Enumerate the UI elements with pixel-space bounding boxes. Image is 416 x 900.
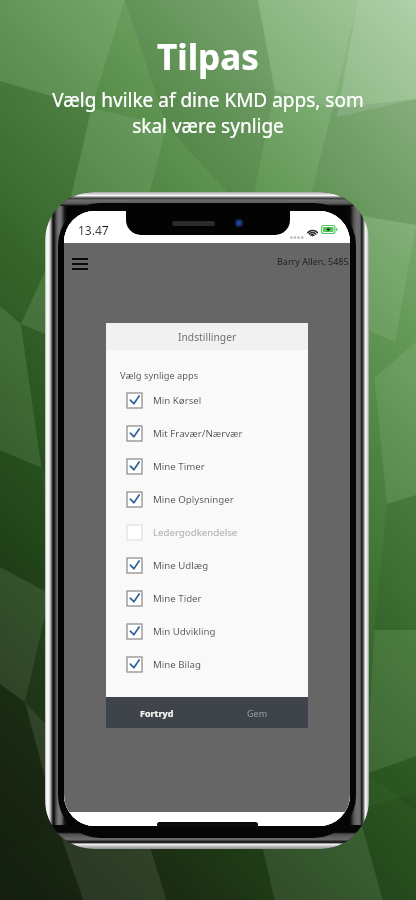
staticText: Her kan du se oplysninger om din tillæg,… <box>112 680 303 726</box>
staticText: Mine Oplysninger <box>140 653 274 675</box>
staticText: Min Udvikling <box>153 625 216 638</box>
staticText: Barry Allen, 5485 <box>277 255 349 267</box>
button[interactable]: Mine Udlæg <box>106 549 308 582</box>
staticText: Mine Udlæg <box>153 559 209 572</box>
staticText: Min Kørsel <box>153 394 202 407</box>
button[interactable]: Gem <box>207 697 308 728</box>
staticText: Fortryd <box>140 707 174 719</box>
button[interactable]: Mine Tider <box>106 582 308 615</box>
button[interactable]: Mine Oplysninger <box>106 483 308 516</box>
staticText: Ledergodkendelse <box>153 526 238 539</box>
staticText: Vælg synlige apps <box>120 369 199 382</box>
staticText: Mine Oplysninger <box>153 493 234 506</box>
button[interactable]: Mit Fravær/Nærvær <box>106 417 308 450</box>
staticText: Mine Timer <box>153 460 205 473</box>
staticText: Tilpas <box>157 33 259 81</box>
button[interactable]: Menu <box>72 258 88 270</box>
button[interactable]: Mine Timer <box>106 450 308 483</box>
button[interactable]: Min Udvikling <box>106 615 308 648</box>
button[interactable]: Fortryd <box>106 697 207 728</box>
staticText: Mine Bilag <box>153 658 201 671</box>
staticText: Her kan du se oplysninger om kørsel, fra… <box>122 526 292 587</box>
staticText: Mine Tider <box>153 592 202 605</box>
staticText: 13.47 <box>78 222 109 238</box>
staticText: Indstillinger <box>178 330 237 344</box>
staticText: Vælg hvilke af dine KMD apps, som skal v… <box>52 87 364 138</box>
button[interactable]: Min Kørsel <box>106 384 308 417</box>
button[interactable]: Ledergodkendelse <box>106 516 308 549</box>
staticText: Gem <box>247 707 268 719</box>
button[interactable]: Mine Bilag <box>106 648 308 681</box>
staticText: Mit Fravær/Nærvær <box>133 499 281 521</box>
staticText: Mit Fravær/Nærvær <box>153 427 243 440</box>
